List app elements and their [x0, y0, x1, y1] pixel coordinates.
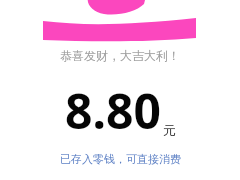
- button[interactable]: 已存入零钱，可直接消费: [60, 152, 181, 166]
- staticText: 8.80: [65, 78, 161, 143]
- staticText: 恭喜发财，大吉大利！: [60, 48, 180, 63]
- staticText: 元: [163, 122, 176, 138]
- button[interactable]: 8.80: [65, 78, 176, 143]
- other: Lucky money decoration: [0, 0, 240, 180]
